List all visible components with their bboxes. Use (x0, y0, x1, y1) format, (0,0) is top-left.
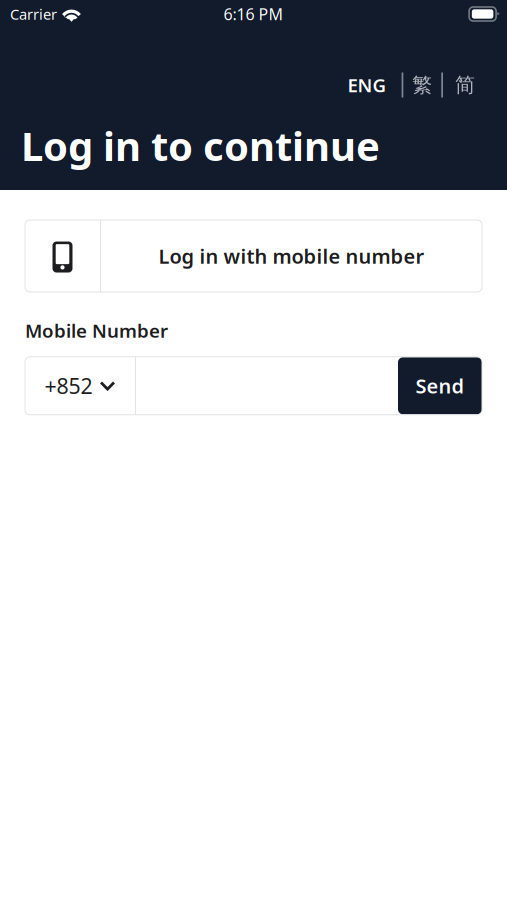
button[interactable]: 繁 (403, 70, 441, 100)
button[interactable]: Send (398, 357, 482, 414)
staticText: Mobile Number (25, 318, 168, 343)
button[interactable]: Country code +852 (25, 357, 135, 415)
staticText: 简 (455, 73, 475, 97)
staticText: 繁 (412, 73, 432, 97)
staticText: ENG (348, 73, 387, 97)
staticText: Log in with mobile number (158, 243, 424, 269)
button[interactable]: 简 (443, 70, 475, 100)
staticText: Log in to continue (21, 119, 380, 172)
staticText: Send (415, 372, 464, 399)
staticText: +852 (44, 372, 92, 400)
staticText: 6:16 PM (223, 3, 283, 25)
staticText: Carrier (10, 4, 57, 24)
button[interactable]: ENG (348, 70, 402, 100)
button[interactable]: Log in with mobile number (25, 220, 482, 292)
